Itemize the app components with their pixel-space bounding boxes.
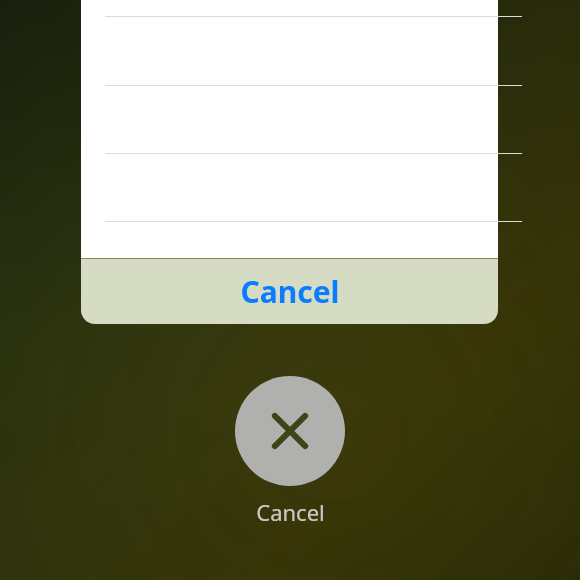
button[interactable] [81, 153, 498, 221]
button[interactable] [81, 221, 498, 289]
button[interactable] [81, 85, 498, 153]
button[interactable] [81, 16, 498, 84]
staticText: Cancel [240, 271, 340, 312]
button[interactable]: Cancel [235, 376, 345, 486]
button[interactable]: Cancel [81, 259, 498, 324]
staticText: Cancel [256, 497, 325, 527]
